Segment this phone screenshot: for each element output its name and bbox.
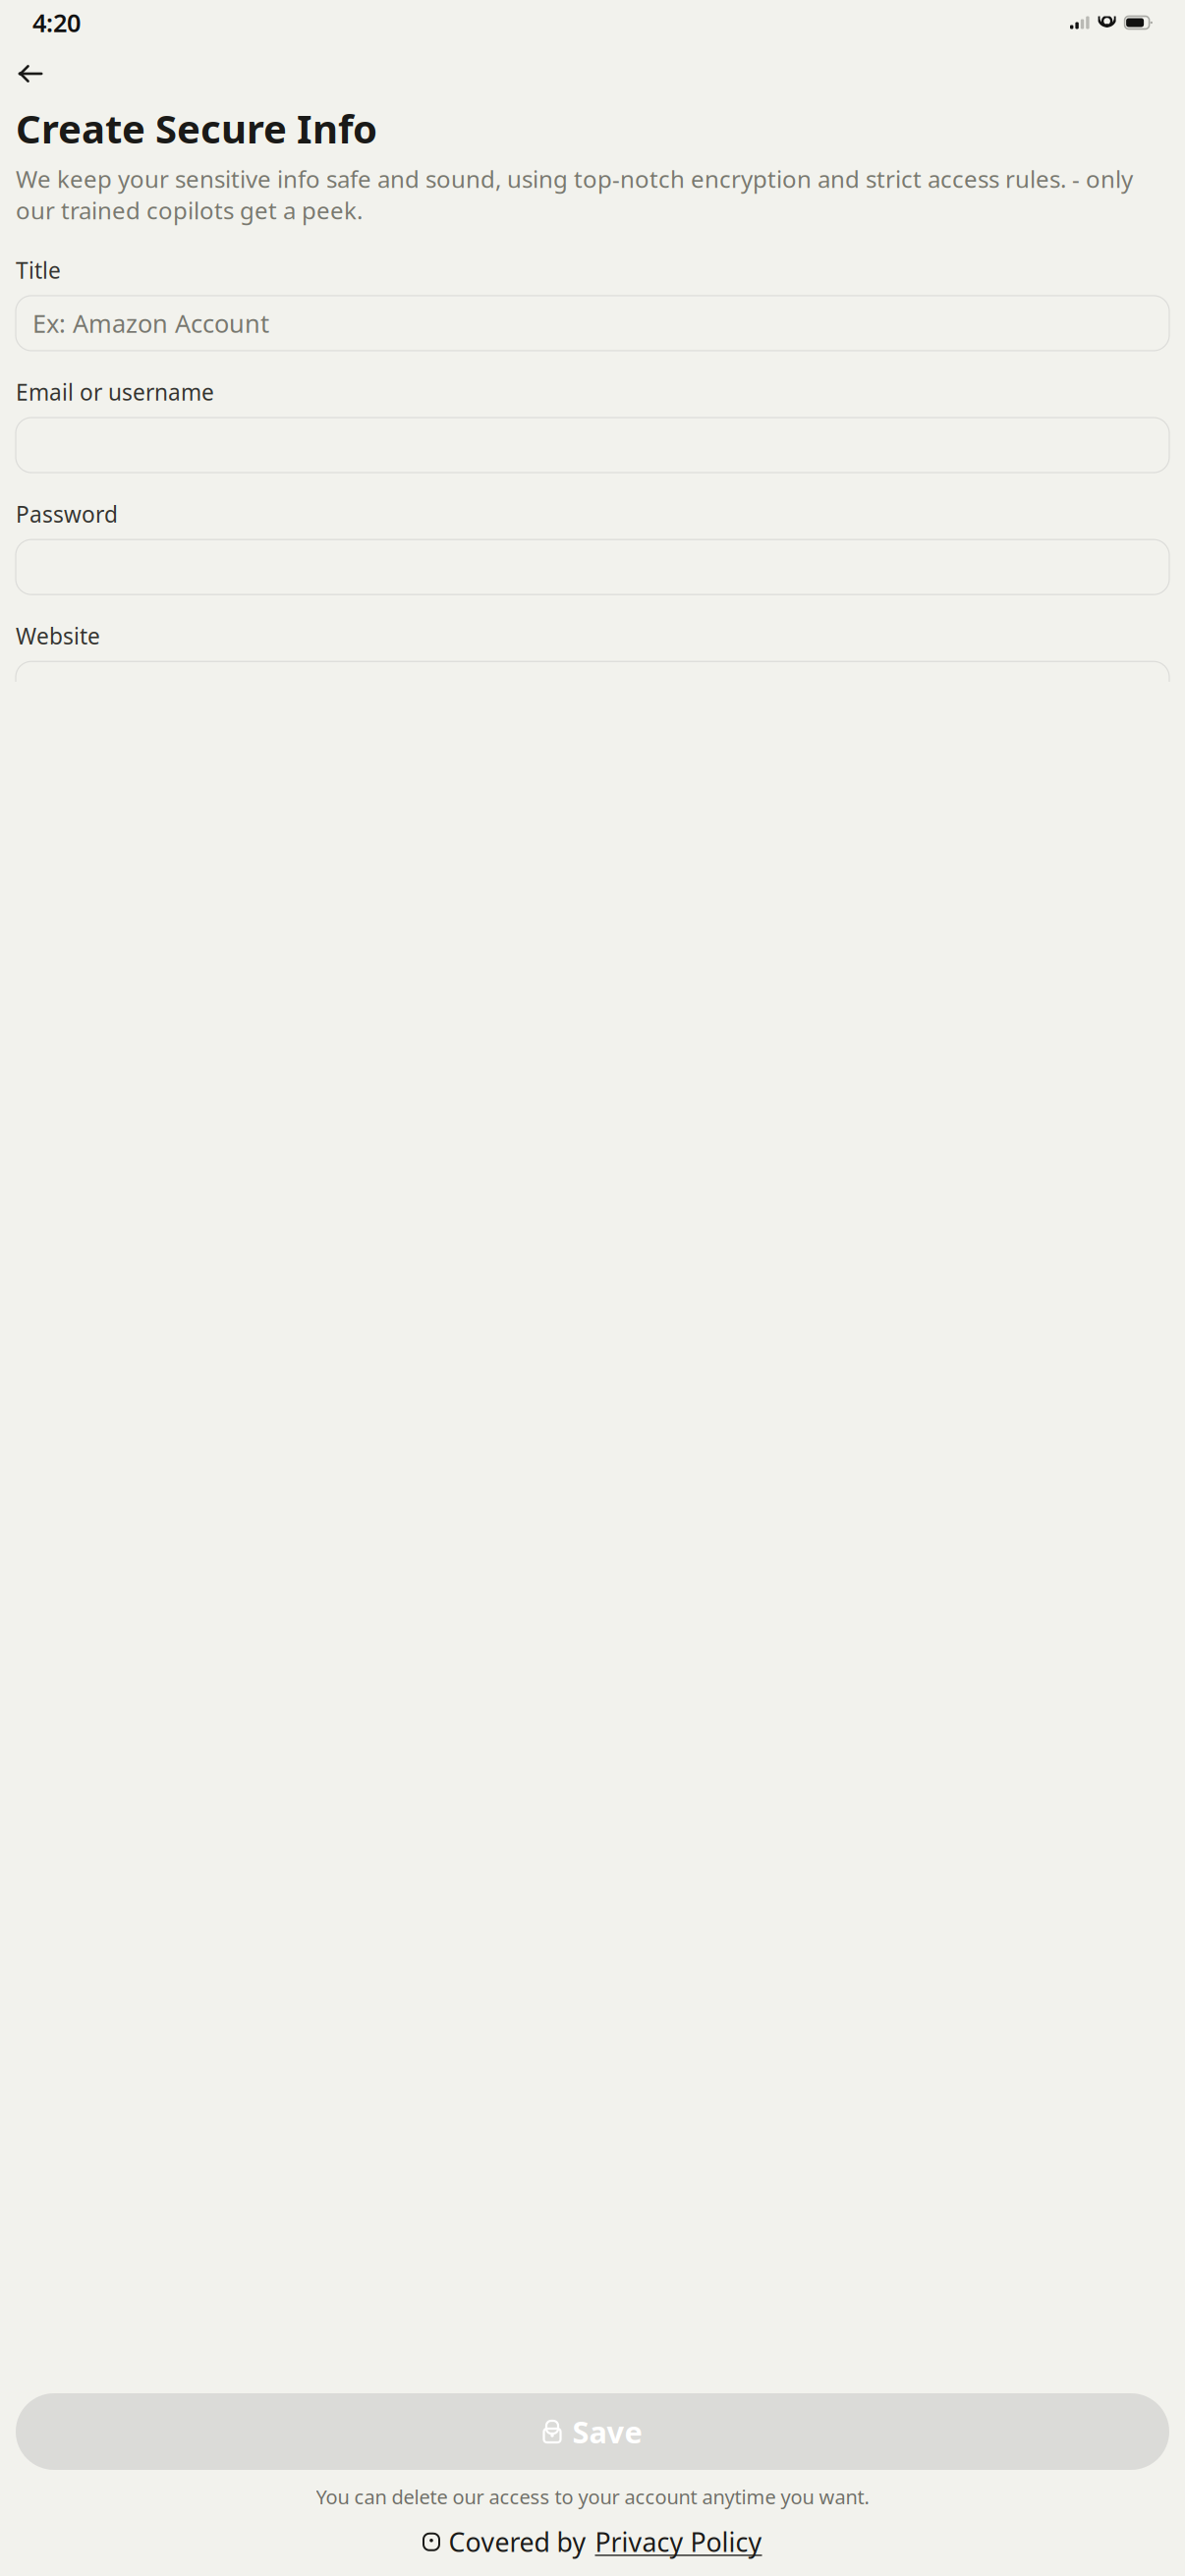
staticText: Email or username [16,377,214,407]
staticText: 4:20 [32,6,81,39]
staticText: Ex: Amazon Account [32,307,269,340]
staticText: Create Secure Info [16,102,377,154]
button[interactable]: Save [16,2393,1169,2470]
staticText: We keep your sensitive info safe and sou… [16,163,1133,226]
staticText: Covered by [449,2525,586,2559]
staticText: Save [572,2412,642,2452]
button[interactable]: Ex: Amazon Account [16,296,1169,351]
staticText: You can delete our access to your accoun… [316,2484,869,2510]
staticText: Website [16,621,100,651]
button[interactable]: Back [16,55,57,92]
button[interactable]: Covered by [423,2525,762,2559]
staticText: Privacy Policy [595,2525,762,2559]
staticText: Password [16,499,118,529]
staticText: Title [16,255,61,285]
